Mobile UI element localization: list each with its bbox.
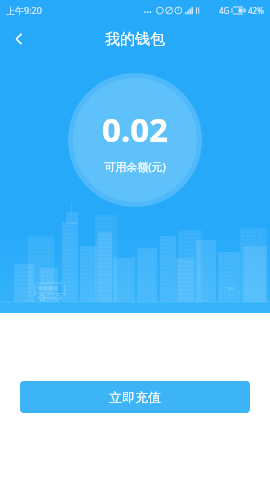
staticText: 我的钱包 [105, 30, 165, 49]
staticText: 0.02 [102, 107, 168, 152]
staticText: 立即充值 [109, 389, 161, 405]
staticText: 42% [248, 5, 264, 16]
button[interactable]: Back [0, 20, 38, 58]
button[interactable]: 立即充值 [20, 381, 250, 413]
staticText: 可用余额(元) [104, 159, 166, 174]
staticText: 上午9:20 [6, 4, 42, 16]
staticText: 4G [219, 5, 230, 16]
